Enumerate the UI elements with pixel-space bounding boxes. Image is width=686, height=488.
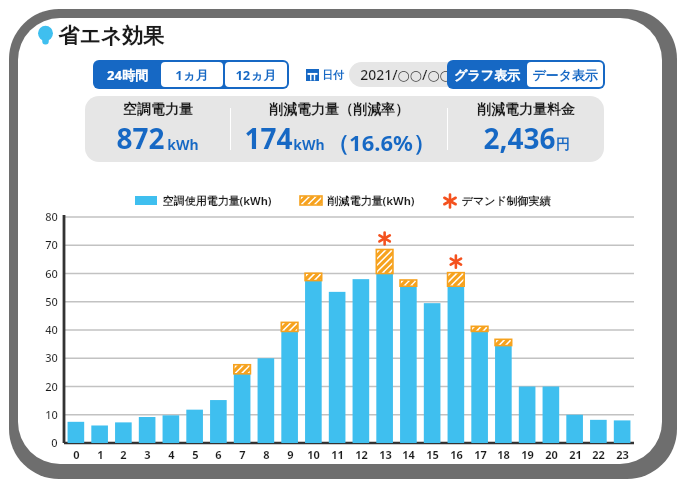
staticText: 80	[45, 209, 58, 224]
button[interactable]: データ表示	[527, 62, 603, 87]
staticText: 30	[45, 350, 58, 365]
staticText: 12ヵ月	[235, 66, 277, 84]
staticText: 24時間	[107, 66, 148, 84]
staticText: 0	[73, 447, 80, 462]
button[interactable]: 空調電力量	[85, 101, 230, 157]
staticText: 20	[45, 379, 58, 394]
staticText: 50	[45, 294, 58, 309]
staticText: 3	[144, 447, 151, 462]
staticText: 23	[616, 447, 629, 462]
staticText: 4	[168, 447, 175, 462]
staticText: 2021/○○/○○	[360, 65, 452, 84]
staticText: 12	[355, 447, 368, 462]
staticText: グラフ表示	[454, 67, 520, 83]
staticText: 13	[379, 447, 392, 462]
staticText: kWh	[167, 135, 199, 154]
staticText: 5	[192, 447, 199, 462]
staticText: 7	[239, 447, 246, 462]
button[interactable]: 削減電力量料金	[448, 101, 604, 157]
staticText: 空調電力量	[123, 101, 193, 119]
staticText: 日付	[322, 68, 344, 82]
staticText: 2	[120, 447, 127, 462]
staticText: （16.6%）	[327, 127, 435, 157]
staticText: データ表示	[532, 67, 598, 83]
staticText: 11	[331, 447, 344, 462]
staticText: 17	[474, 447, 487, 462]
staticText: 21	[569, 447, 582, 462]
staticText: 174	[244, 119, 293, 157]
staticText: 省エネ効果	[58, 23, 164, 49]
staticText: kWh	[293, 135, 325, 154]
staticText: 18	[497, 447, 510, 462]
staticText: 2,436	[483, 119, 556, 157]
staticText: 40	[45, 322, 58, 337]
staticText: 15	[426, 447, 439, 462]
staticText: 削減電力量(kWh)	[327, 193, 415, 208]
button[interactable]: グラフ表示	[449, 62, 525, 87]
staticText: 1	[97, 447, 104, 462]
staticText: 9	[287, 447, 294, 462]
button[interactable]: 24時間	[95, 62, 159, 87]
staticText: 872	[116, 119, 165, 157]
staticText: 20	[545, 447, 558, 462]
staticText: 16	[450, 447, 463, 462]
staticText: 22	[592, 447, 605, 462]
button[interactable]: 削減電力量（削減率）	[231, 101, 447, 157]
staticText: 60	[45, 266, 58, 281]
staticText: 19	[521, 447, 534, 462]
staticText: 10	[307, 447, 320, 462]
staticText: 削減電力量料金	[477, 101, 575, 119]
staticText: 70	[45, 237, 58, 252]
button[interactable]: 12ヵ月	[225, 62, 287, 87]
staticText: デマンド制御実績	[461, 194, 551, 208]
staticText: 6	[215, 447, 222, 462]
staticText: 空調使用電力量(kWh)	[162, 193, 272, 208]
button[interactable]: Select date	[306, 69, 319, 81]
staticText: 10	[45, 407, 58, 422]
staticText: 8	[263, 447, 270, 462]
button[interactable]: 2021/○○/○○	[349, 62, 463, 87]
staticText: 1ヵ月	[175, 66, 209, 84]
button[interactable]: 1ヵ月	[161, 62, 223, 87]
staticText: 削減電力量（削減率）	[269, 101, 409, 119]
staticText: 0	[51, 435, 58, 450]
staticText: 円	[556, 136, 570, 154]
staticText: 14	[402, 447, 415, 462]
